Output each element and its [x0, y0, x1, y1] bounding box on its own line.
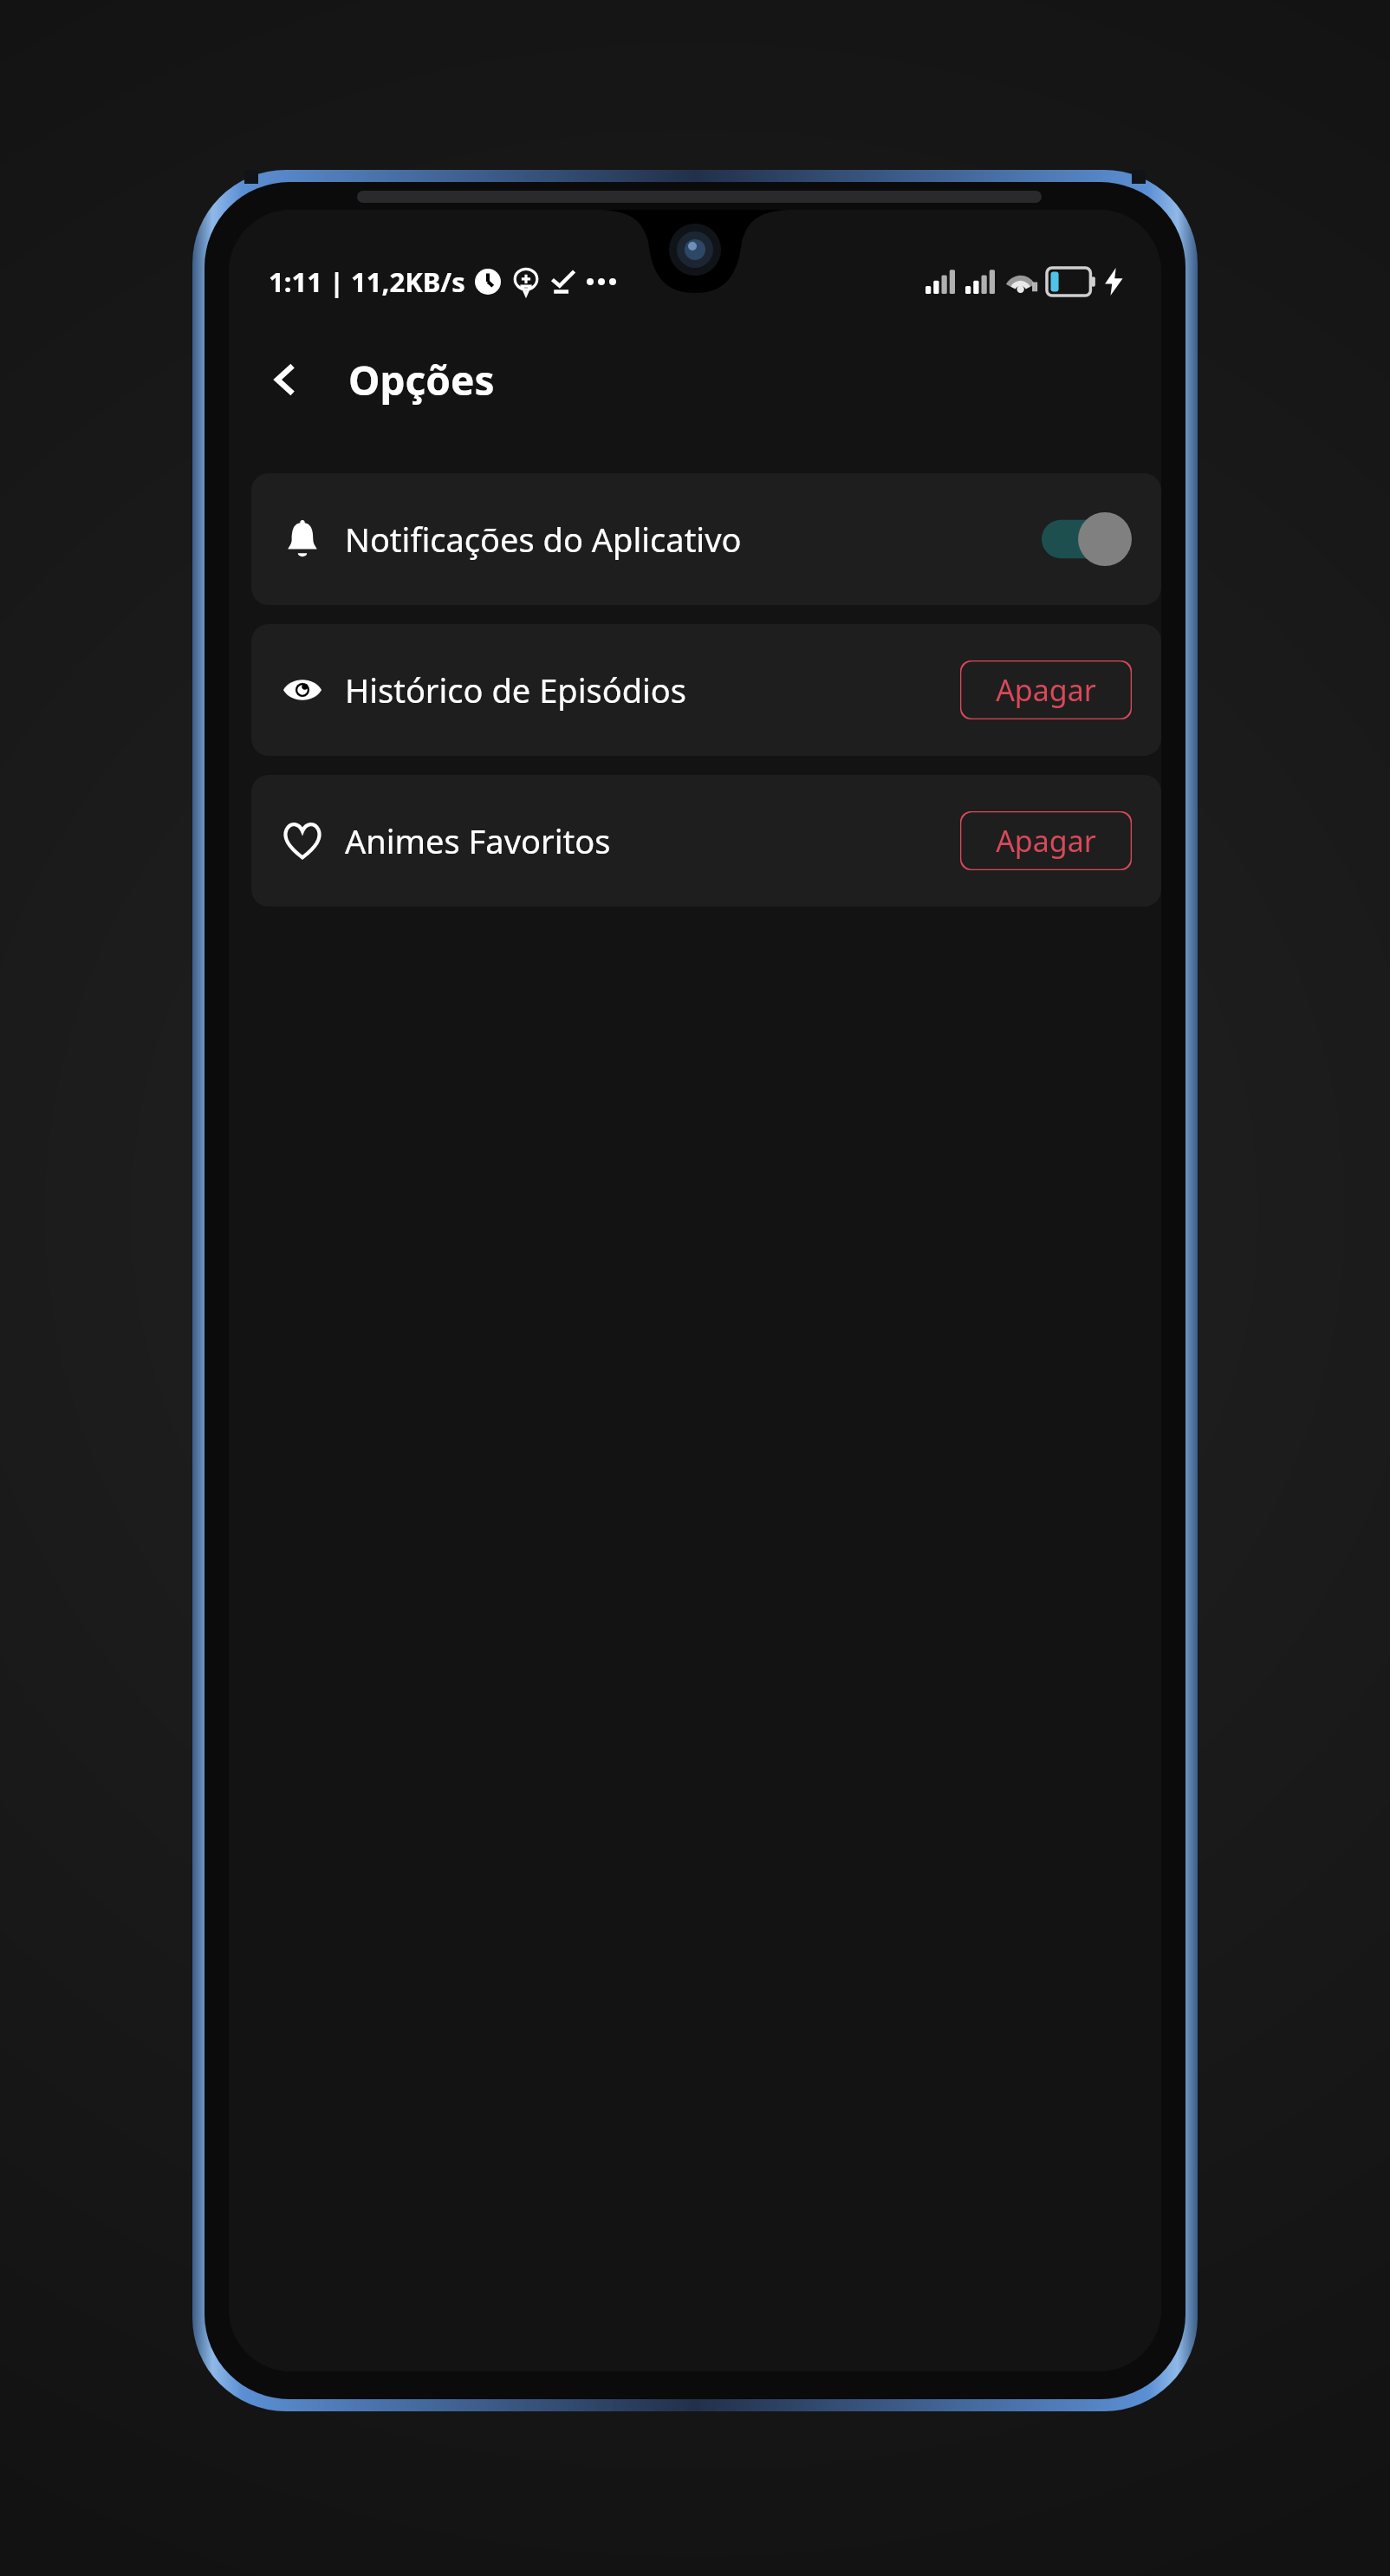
button[interactable]: Histórico de Episódios — [251, 624, 1161, 756]
button[interactable]: Voltar — [253, 347, 319, 413]
button[interactable]: Notificações do Aplicativo — [251, 473, 1161, 605]
staticText: 1:11 | 11,2KB/s — [269, 263, 465, 300]
staticText: Apagar — [996, 670, 1096, 710]
staticText: Opções — [348, 353, 495, 407]
staticText: Notificações do Aplicativo — [345, 517, 1042, 562]
button[interactable]: Alternar notificações — [1042, 512, 1132, 566]
button[interactable]: Apagar — [960, 811, 1132, 870]
staticText: Histórico de Episódios — [345, 667, 960, 712]
button[interactable]: Animes Favoritos — [251, 775, 1161, 907]
staticText: Animes Favoritos — [345, 818, 960, 863]
button[interactable]: Apagar — [960, 660, 1132, 719]
staticText: Apagar — [996, 821, 1096, 861]
